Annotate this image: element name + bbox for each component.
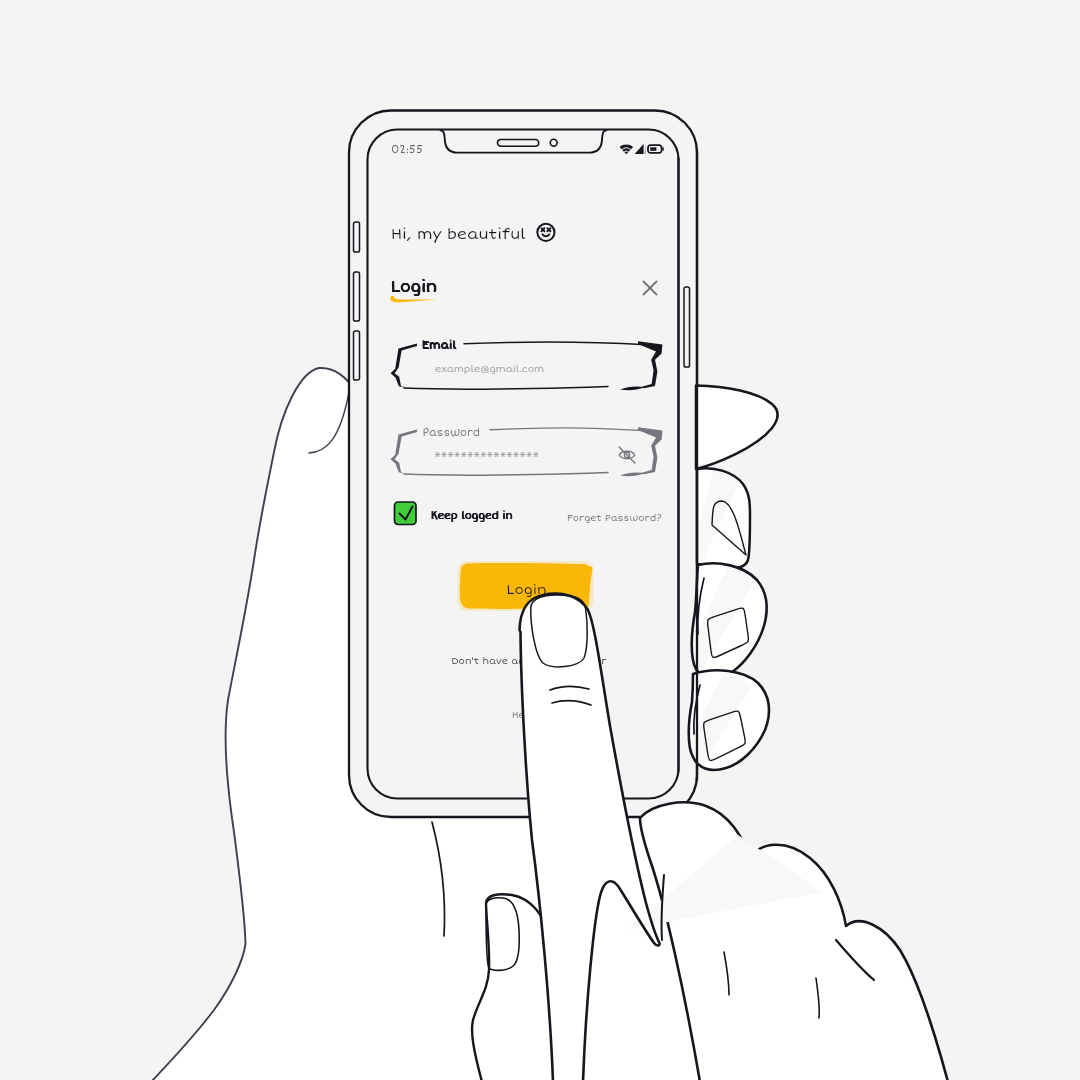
- button[interactable]: Password field: [394, 429, 660, 475]
- button[interactable]: Keep logged in: [392, 500, 518, 528]
- button[interactable]: Forget Password?: [566, 504, 662, 528]
- button[interactable]: Show password: [618, 444, 642, 466]
- button[interactable]: Close: [616, 276, 660, 306]
- button[interactable]: Register: [448, 650, 606, 672]
- button[interactable]: Help: [506, 706, 548, 726]
- button[interactable]: Email field: [394, 343, 660, 389]
- button[interactable]: Login button: [460, 563, 592, 609]
